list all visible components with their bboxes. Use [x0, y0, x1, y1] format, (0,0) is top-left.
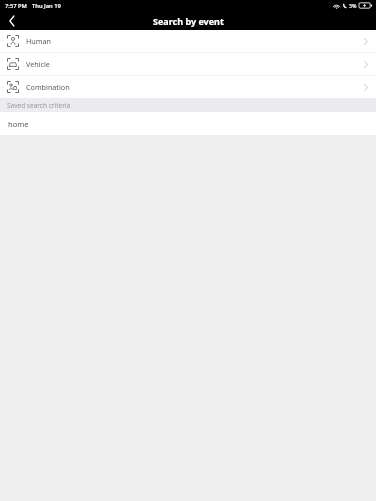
staticText: Vehicle — [26, 59, 50, 69]
button[interactable]: Vehicle — [0, 53, 376, 75]
button[interactable]: Back — [0, 11, 24, 30]
staticText: Saved search criteria — [7, 101, 71, 110]
button[interactable]: Combination — [0, 76, 376, 98]
staticText: 7:57 PM — [5, 2, 27, 10]
staticText: Combination — [26, 82, 70, 92]
staticText: Thu Jan 19 — [32, 2, 61, 10]
button[interactable]: home — [0, 112, 376, 135]
staticText: home — [8, 119, 29, 129]
staticText: 3% — [349, 2, 357, 9]
staticText: Human — [26, 36, 51, 46]
button[interactable]: Human — [0, 30, 376, 52]
staticText: Search by event — [153, 15, 224, 27]
